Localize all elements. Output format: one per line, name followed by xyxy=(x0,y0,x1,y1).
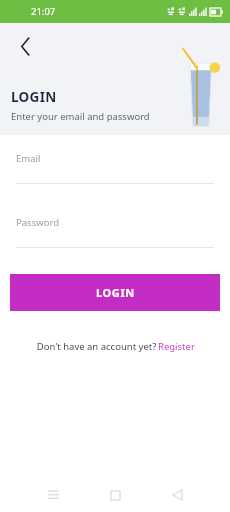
button[interactable]: Password xyxy=(0,216,230,248)
button[interactable]: Recent apps xyxy=(40,482,66,508)
button[interactable]: Home xyxy=(102,482,128,508)
staticText: 21:07 xyxy=(31,5,56,18)
staticText: Password xyxy=(16,216,59,229)
staticText: Register xyxy=(158,340,195,353)
button[interactable]: Register xyxy=(158,340,195,353)
staticText: LOGIN xyxy=(96,285,135,300)
button[interactable]: Back xyxy=(164,482,190,508)
staticText: Don't have an account yet? xyxy=(35,340,158,353)
button[interactable]: Email xyxy=(0,152,230,184)
button[interactable]: LOGIN xyxy=(10,274,220,311)
staticText: LOGIN xyxy=(11,88,57,106)
staticText: Email xyxy=(16,152,41,165)
staticText: Enter your email and password xyxy=(11,110,150,123)
button[interactable]: Back xyxy=(8,29,42,63)
